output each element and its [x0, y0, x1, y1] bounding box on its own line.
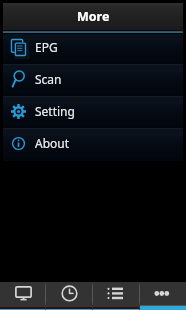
staticText: Scan — [35, 71, 62, 87]
button[interactable]: Scan — [3, 64, 183, 96]
button[interactable]: TV — [0, 282, 46, 310]
staticText: More — [77, 8, 110, 25]
button[interactable]: EPG — [3, 32, 183, 64]
button[interactable]: Setting — [3, 96, 183, 128]
staticText: Setting — [35, 103, 75, 119]
button[interactable]: About — [3, 128, 183, 160]
button[interactable]: Clock — [46, 282, 92, 310]
button[interactable]: List — [92, 282, 139, 310]
staticText: About — [35, 135, 70, 151]
button[interactable]: More — [139, 282, 186, 310]
staticText: EPG — [35, 39, 58, 55]
